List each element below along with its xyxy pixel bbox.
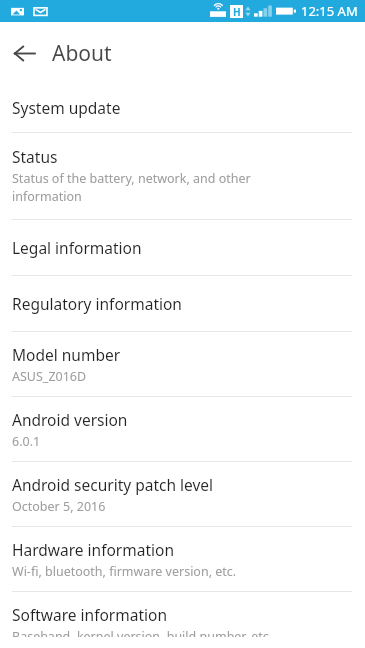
staticText: 6.0.1 [12, 433, 41, 450]
button[interactable]: Status [0, 133, 365, 219]
button[interactable]: Back [0, 29, 48, 77]
staticText: 12:15 AM [301, 2, 358, 20]
button[interactable]: Legal information [0, 220, 365, 275]
staticText: Model number [12, 344, 121, 365]
staticText: Legal information [12, 237, 142, 258]
button[interactable]: Software information [0, 592, 365, 648]
staticText: Status of the battery, network, and othe… [12, 170, 251, 187]
staticText: About [52, 39, 112, 68]
button[interactable]: Regulatory information [0, 276, 365, 331]
button[interactable]: Android security patch level [0, 462, 365, 526]
staticText: System update [12, 97, 121, 118]
staticText: H [233, 5, 241, 18]
button[interactable]: Android version [0, 397, 365, 461]
staticText: Wi-fi, bluetooth, firmware version, etc. [12, 563, 237, 580]
button[interactable]: System update [0, 84, 365, 132]
staticText: Regulatory information [12, 293, 182, 314]
staticText: Android security patch level [12, 474, 214, 495]
staticText: Android version [12, 409, 128, 430]
button[interactable]: Model number [0, 332, 365, 396]
button[interactable]: Hardware information [0, 527, 365, 591]
staticText: Baseband, kernel version, build number, … [12, 628, 273, 637]
staticText: Status [12, 146, 58, 167]
staticText: information [12, 188, 82, 205]
staticText: October 5, 2016 [12, 498, 106, 515]
staticText: Hardware information [12, 539, 174, 560]
staticText: ASUS_Z016D [12, 368, 87, 385]
staticText: Software information [12, 604, 167, 625]
